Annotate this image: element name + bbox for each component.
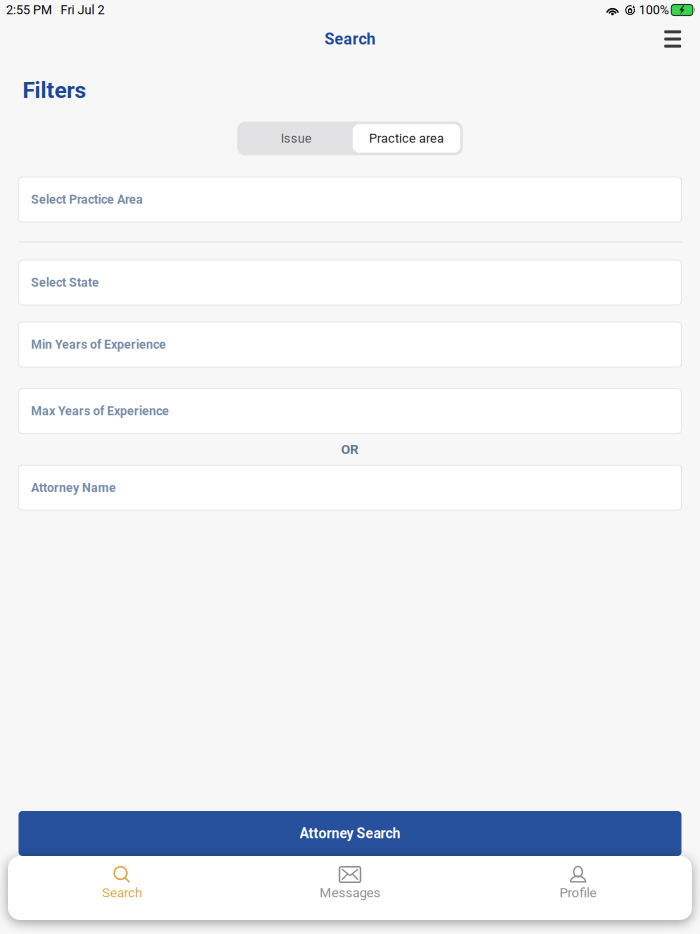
staticText: 2:55 PM	[6, 3, 52, 17]
button[interactable]: Select State	[18, 260, 681, 305]
staticText: Attorney Name	[31, 480, 116, 495]
staticText: Max Years of Experience	[31, 404, 169, 418]
staticText: Issue	[281, 131, 312, 146]
staticText: OR	[341, 442, 359, 457]
button[interactable]: Search	[8, 856, 236, 920]
staticText: Profile	[559, 885, 596, 901]
button[interactable]: Profile	[464, 856, 692, 920]
staticText: Practice area	[369, 131, 444, 146]
staticText: Min Years of Experience	[31, 337, 166, 352]
staticText: Filters	[22, 77, 86, 104]
staticText: Select Practice Area	[31, 192, 143, 207]
staticText: Attorney Search	[299, 825, 400, 842]
button[interactable]: Select Practice Area	[18, 177, 681, 222]
button[interactable]: Min Years of Experience	[18, 322, 681, 367]
button[interactable]: Issue	[240, 124, 353, 153]
button[interactable]: Max Years of Experience	[18, 389, 681, 434]
staticText: 100%	[639, 3, 669, 17]
staticText: Messages	[319, 885, 380, 901]
staticText: Search	[102, 885, 142, 901]
staticText: Select State	[31, 275, 99, 290]
button[interactable]: Attorney Search	[18, 811, 681, 856]
staticText: Search	[324, 30, 375, 48]
button[interactable]: Menu	[656, 24, 690, 54]
staticText: Fri Jul 2	[60, 3, 104, 17]
button[interactable]: Attorney Name	[18, 465, 681, 510]
button[interactable]: Practice area	[353, 124, 460, 153]
button[interactable]: Messages	[236, 856, 464, 920]
